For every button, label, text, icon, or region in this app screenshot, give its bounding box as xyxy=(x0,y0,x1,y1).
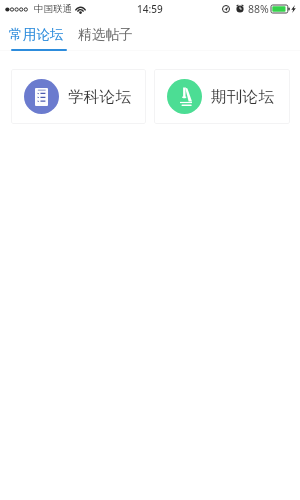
staticText: 期刊论坛 xyxy=(211,87,275,107)
other: Charging xyxy=(291,5,296,13)
other: Location services xyxy=(222,5,230,13)
button[interactable]: 常用论坛 xyxy=(9,26,64,43)
staticText: 中国联通 xyxy=(34,3,72,15)
staticText: 常用论坛 xyxy=(9,26,64,43)
other: Battery 88 percent xyxy=(271,4,290,14)
staticText: 精选帖子 xyxy=(78,26,133,43)
button[interactable]: 精选帖子 xyxy=(78,26,133,43)
other: Wi-Fi xyxy=(75,5,86,14)
button[interactable]: 期刊论坛 xyxy=(154,69,290,124)
button[interactable]: 学科论坛 xyxy=(11,69,146,124)
other: Signal strength xyxy=(5,5,34,14)
staticText: 14:59 xyxy=(137,2,163,16)
staticText: 88% xyxy=(248,2,269,16)
other: Alarm set xyxy=(236,5,244,13)
staticText: 学科论坛 xyxy=(68,87,132,107)
